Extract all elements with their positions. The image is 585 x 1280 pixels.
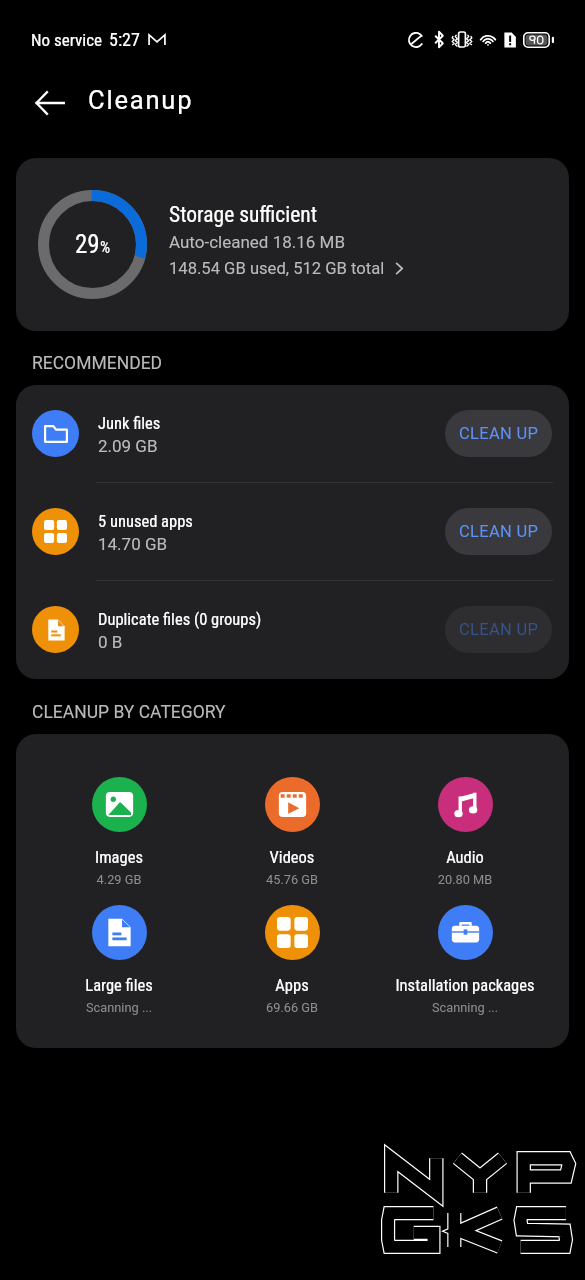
staticText: 2.09 GB	[98, 436, 158, 456]
staticText: Junk files	[98, 414, 161, 433]
staticText: Large files	[31, 976, 207, 995]
staticText: 0 B	[98, 632, 123, 652]
button[interactable]: 29	[16, 158, 569, 331]
button[interactable]: Videos	[204, 777, 380, 889]
staticText: Scanning ...	[31, 1000, 207, 1015]
staticText: 148.54 GB used, 512 GB total	[169, 259, 385, 278]
staticText: Videos	[204, 848, 380, 867]
staticText: Audio	[377, 848, 553, 867]
button[interactable]: CLEAN UP	[445, 410, 552, 457]
staticText: 5 unused apps	[98, 512, 193, 531]
staticText: Storage sufficient	[169, 202, 318, 227]
button[interactable]: Apps	[204, 905, 380, 1017]
staticText: Auto-cleaned 18.16 MB	[169, 232, 346, 252]
staticText: 14.70 GB	[98, 534, 168, 554]
staticText: CLEAN UP	[459, 522, 539, 541]
button[interactable]: Images	[31, 777, 207, 889]
button[interactable]: CLEAN UP	[445, 508, 552, 555]
staticText: Apps	[204, 976, 380, 995]
staticText: No service	[31, 30, 103, 50]
button[interactable]: Back	[27, 80, 73, 126]
staticText: Images	[31, 848, 207, 867]
staticText: 5:27	[109, 29, 140, 50]
staticText: 69.66 GB	[204, 1000, 380, 1015]
button[interactable]: Large files	[31, 905, 207, 1017]
staticText: RECOMMENDED	[32, 353, 163, 374]
button[interactable]: Junk files	[16, 385, 569, 483]
staticText: Cleanup	[88, 85, 194, 115]
button[interactable]: Installation packages	[377, 905, 553, 1017]
staticText: CLEAN UP	[459, 620, 539, 639]
staticText: 4.29 GB	[31, 872, 207, 887]
staticText: Scanning ...	[377, 1000, 553, 1015]
staticText: 45.76 GB	[204, 872, 380, 887]
staticText: Duplicate files (0 groups)	[98, 610, 262, 629]
staticText: %	[100, 238, 111, 257]
staticText: Installation packages	[377, 976, 553, 995]
button[interactable]: Duplicate files (0 groups)	[16, 581, 569, 679]
button[interactable]: CLEAN UP	[445, 606, 552, 653]
staticText: CLEAN UP	[459, 424, 539, 443]
button[interactable]: 5 unused apps	[16, 483, 569, 581]
button[interactable]: Audio	[377, 777, 553, 889]
staticText: 20.80 MB	[377, 872, 553, 887]
staticText: 29	[75, 230, 100, 259]
staticText: CLEANUP BY CATEGORY	[32, 702, 226, 723]
